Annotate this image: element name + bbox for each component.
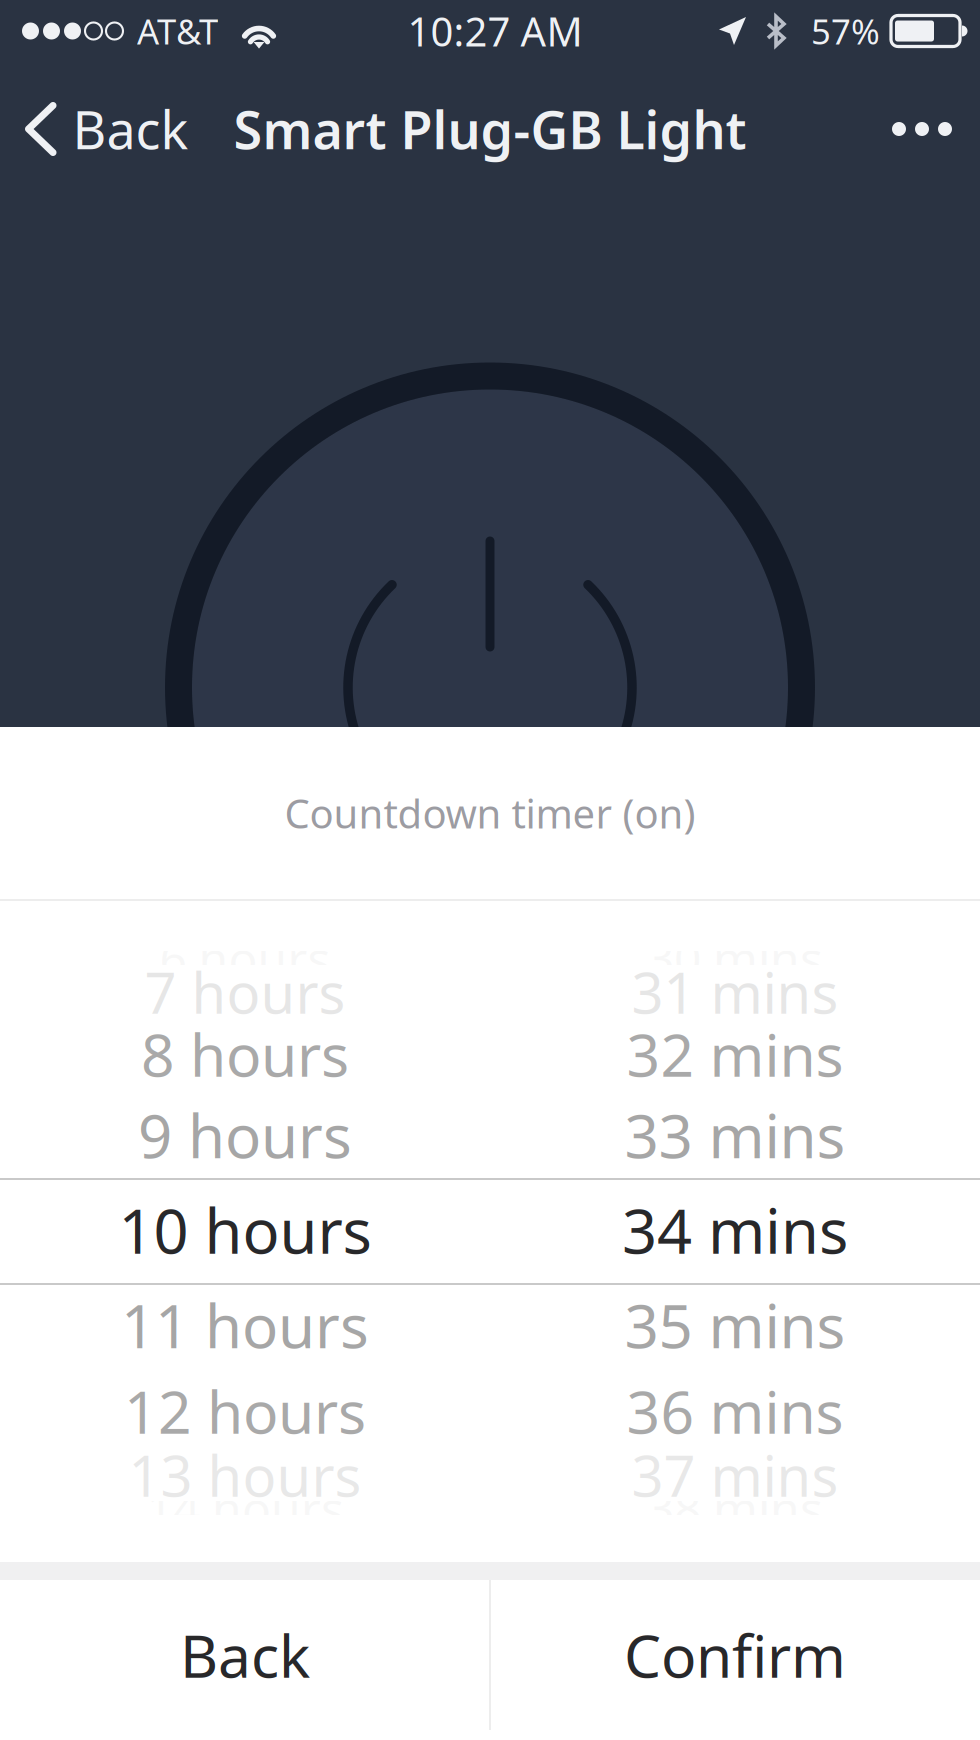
- button[interactable]: Power: [150, 347, 830, 1027]
- staticText: 38 mins: [647, 1476, 823, 1540]
- button[interactable]: 6 hours: [0, 901, 490, 1562]
- staticText: 10 hours: [118, 1189, 371, 1271]
- staticText: 7 hours: [144, 955, 345, 1029]
- staticText: 10:27 AM: [407, 4, 582, 57]
- staticText: AT&T: [137, 8, 218, 54]
- staticText: 14 hours: [146, 1476, 344, 1540]
- staticText: 9 hours: [138, 1095, 352, 1175]
- staticText: Countdown timer (on): [284, 786, 695, 839]
- staticText: 13 hours: [128, 1438, 361, 1512]
- staticText: Smart Plug-GB Light: [233, 94, 746, 164]
- staticText: 31 mins: [631, 955, 838, 1029]
- staticText: 35 mins: [624, 1285, 845, 1365]
- staticText: 33 mins: [624, 1095, 845, 1175]
- staticText: 34 mins: [622, 1189, 848, 1271]
- staticText: 6 hours: [159, 926, 330, 990]
- staticText: Back: [180, 1616, 310, 1694]
- staticText: 30 mins: [647, 926, 823, 990]
- staticText: 37 mins: [631, 1438, 838, 1512]
- button[interactable]: Confirm: [490, 1580, 980, 1740]
- staticText: 32 mins: [626, 1015, 843, 1093]
- staticText: 36 mins: [626, 1372, 843, 1450]
- staticText: Back: [72, 94, 188, 164]
- button[interactable]: More options: [864, 62, 980, 196]
- staticText: 12 hours: [124, 1372, 366, 1450]
- button[interactable]: Back: [0, 1580, 490, 1740]
- button[interactable]: Back: [0, 62, 206, 196]
- staticText: 57%: [811, 8, 880, 54]
- staticText: Confirm: [624, 1616, 846, 1694]
- staticText: 11 hours: [121, 1285, 369, 1365]
- staticText: 8 hours: [141, 1015, 349, 1093]
- button[interactable]: 30 mins: [490, 901, 980, 1562]
